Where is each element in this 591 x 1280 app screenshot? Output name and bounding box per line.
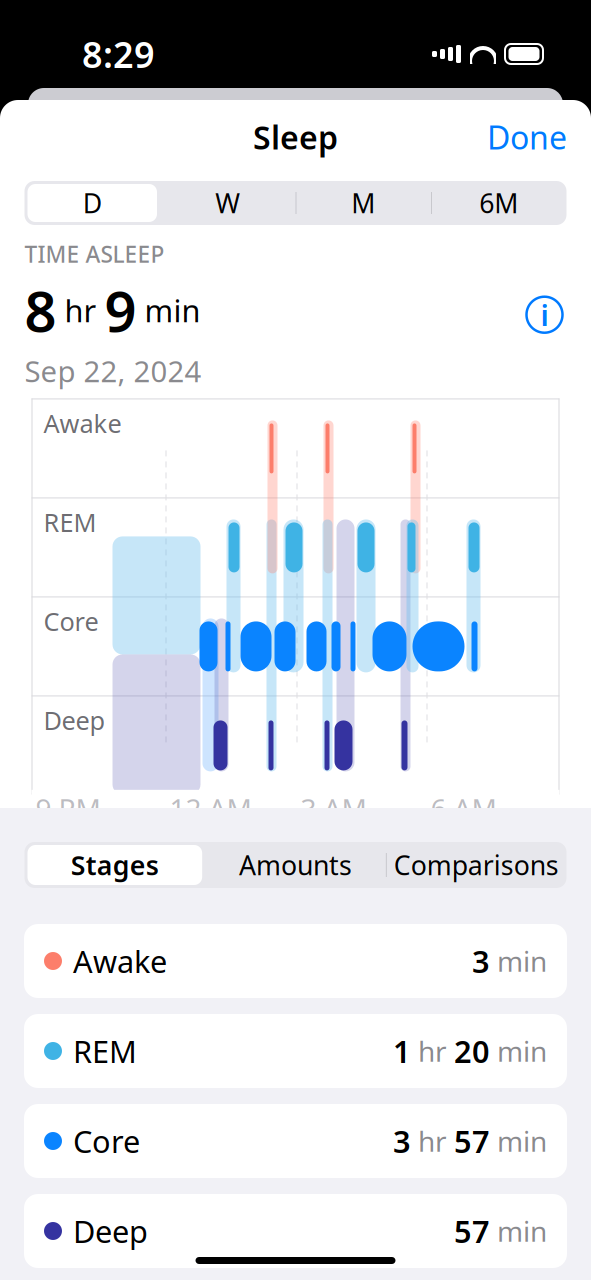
button[interactable]: Amounts — [205, 842, 386, 888]
button[interactable]: Awake — [24, 924, 567, 998]
staticText: 3 — [472, 941, 490, 981]
staticText: hr — [411, 1032, 454, 1070]
staticText: min — [490, 1032, 547, 1070]
staticText: 6M — [479, 185, 518, 221]
button[interactable]: Comparisons — [386, 842, 566, 888]
staticText: D — [83, 185, 102, 221]
staticText: Comparisons — [394, 847, 559, 883]
staticText: min — [136, 290, 200, 331]
staticText: min — [490, 1212, 547, 1250]
staticText: 1 — [393, 1031, 411, 1071]
button[interactable]: About time asleep — [522, 293, 566, 337]
staticText: 6 AM — [430, 790, 496, 827]
button[interactable]: W — [160, 181, 295, 225]
staticText: Deep — [73, 1211, 148, 1251]
staticText: M — [351, 185, 375, 221]
staticText: 3 — [393, 1121, 411, 1161]
staticText: hr — [56, 290, 104, 331]
button[interactable]: Stages — [24, 842, 205, 888]
button[interactable]: Core — [24, 1104, 567, 1178]
staticText: 8:29 — [82, 30, 155, 78]
button[interactable]: Deep — [24, 1194, 567, 1268]
button[interactable]: D — [24, 181, 160, 225]
staticText: hr — [411, 1122, 454, 1160]
staticText: Awake — [73, 941, 167, 981]
staticText: 9 — [104, 273, 136, 347]
staticText: 57 — [454, 1211, 490, 1251]
staticText: Awake — [43, 406, 121, 440]
staticText: TIME ASLEEP — [24, 239, 164, 269]
button[interactable]: 6M — [431, 181, 566, 225]
staticText: Deep — [43, 703, 105, 737]
staticText: Stages — [71, 847, 159, 883]
staticText: Done — [487, 116, 567, 158]
staticText: Sep 22, 2024 — [24, 351, 201, 390]
staticText: W — [215, 185, 240, 221]
staticText: 12 AM — [169, 790, 251, 827]
staticText: Sleep — [253, 116, 338, 158]
staticText: 57 — [454, 1121, 490, 1161]
staticText: REM — [73, 1031, 137, 1071]
staticText: 8 — [24, 273, 56, 347]
button[interactable]: Done — [487, 116, 591, 158]
staticText: i — [540, 295, 548, 334]
staticText: Amounts — [239, 847, 352, 883]
button[interactable]: M — [295, 181, 431, 225]
staticText: 3 AM — [300, 790, 366, 827]
staticText: min — [490, 1122, 547, 1160]
staticText: Core — [43, 604, 98, 638]
staticText: 20 — [454, 1031, 490, 1071]
button[interactable]: REM — [24, 1014, 567, 1088]
staticText: min — [490, 942, 547, 980]
staticText: 9 PM — [35, 790, 100, 827]
staticText: REM — [43, 505, 96, 539]
staticText: Core — [73, 1121, 140, 1161]
